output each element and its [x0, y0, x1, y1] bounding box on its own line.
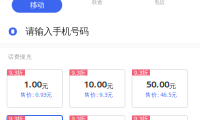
- button[interactable]: 1.00: [7, 69, 62, 107]
- button[interactable]: 50.00: [132, 115, 187, 120]
- button[interactable]: 请输入手机号码: [0, 17, 200, 45]
- staticText: 电信: [154, 0, 164, 5]
- staticText: 话费慢充: [8, 53, 32, 61]
- staticText: 移动: [30, 0, 44, 10]
- staticText: 9.3折: [71, 114, 85, 120]
- staticText: 售价: 0.93元: [20, 91, 52, 98]
- button[interactable]: 50.00: [132, 69, 187, 107]
- button[interactable]: 10.00: [69, 115, 125, 120]
- button[interactable]: 联通: [86, 0, 108, 7]
- staticText: 联通: [92, 0, 102, 5]
- staticText: 元: [169, 82, 176, 90]
- button[interactable]: 10.00: [69, 69, 125, 107]
- staticText: 10.00: [84, 78, 107, 90]
- staticText: 元: [107, 82, 114, 90]
- button[interactable]: 移动: [12, 0, 62, 13]
- button[interactable]: 1.00: [7, 115, 62, 120]
- staticText: 50.00: [146, 78, 169, 90]
- button[interactable]: 电信: [148, 0, 170, 7]
- staticText: 请输入手机号码: [25, 26, 88, 37]
- staticText: 9.3折: [134, 114, 148, 120]
- staticText: 9.3折: [134, 68, 148, 76]
- staticText: 售价: 9.3元: [84, 91, 113, 98]
- staticText: 9.3折: [71, 68, 85, 76]
- staticText: 9.3折: [9, 68, 23, 76]
- staticText: 1.00: [24, 78, 42, 90]
- staticText: 售价: 46.5元: [145, 91, 177, 98]
- staticText: 元: [42, 82, 49, 90]
- staticText: 9.3折: [9, 114, 23, 120]
